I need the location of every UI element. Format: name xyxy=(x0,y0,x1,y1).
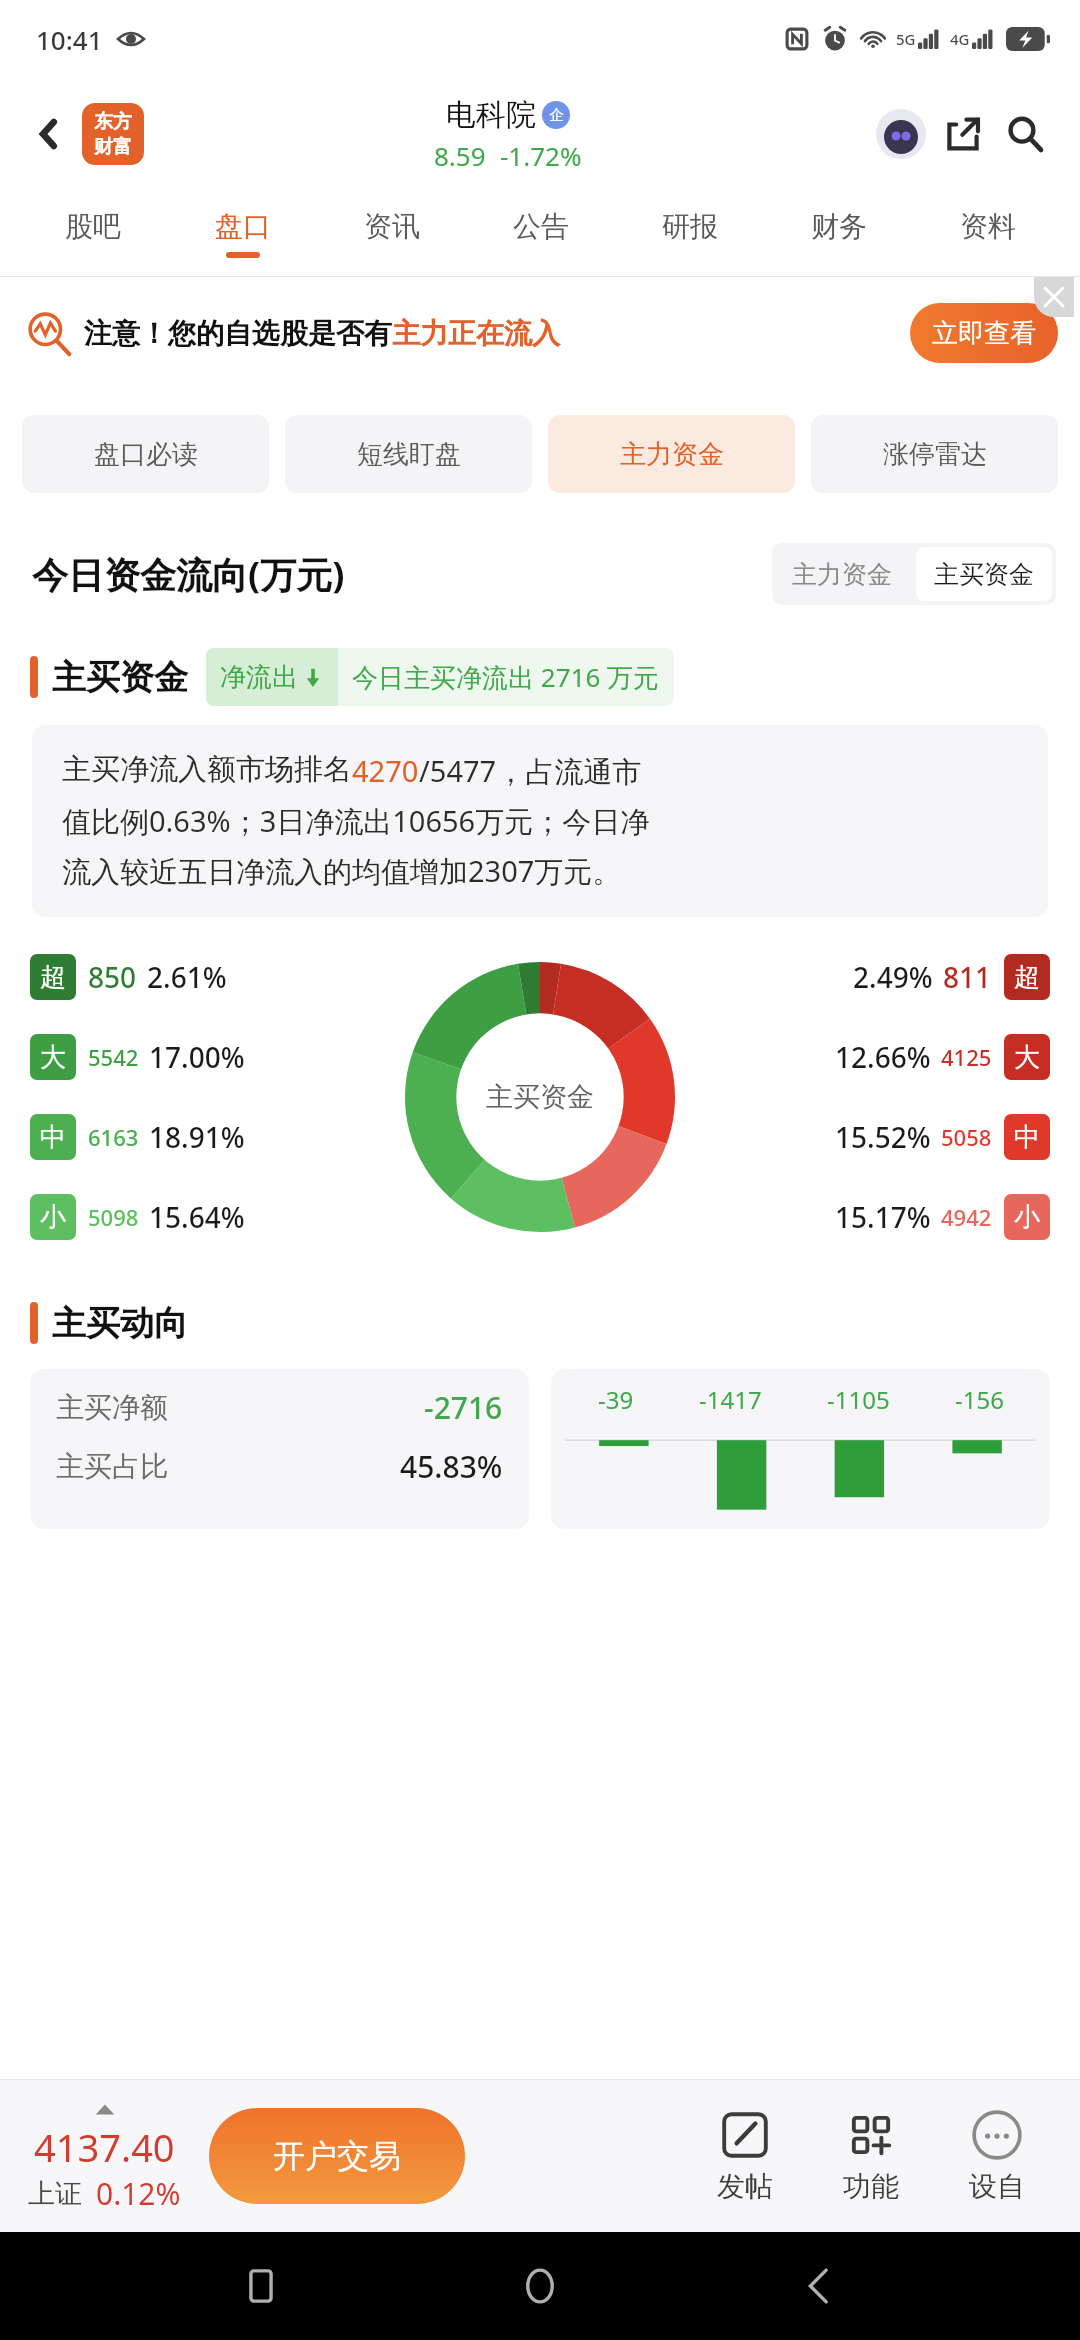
staticText: 中 xyxy=(1014,1121,1040,1154)
button[interactable]: 资料 xyxy=(913,190,1062,276)
staticText: 主力资金 xyxy=(620,438,724,471)
staticText: 功能 xyxy=(843,2169,899,2204)
staticText: 注意！您的自选股是否有 xyxy=(84,316,392,351)
staticText: 小 xyxy=(1014,1201,1040,1234)
staticText: 18.91% xyxy=(149,1118,245,1156)
staticText: 5098 xyxy=(88,1202,139,1232)
button[interactable]: 主页 xyxy=(522,2268,558,2304)
button[interactable]: 公告 xyxy=(466,190,615,276)
staticText: 大 xyxy=(40,1041,66,1074)
staticText: 主买资金 xyxy=(52,656,188,699)
staticText: 主力资金 xyxy=(792,559,892,590)
staticText: -1105 xyxy=(827,1383,890,1416)
button[interactable]: 搜索 xyxy=(996,105,1054,163)
button[interactable]: 涨停雷达 xyxy=(811,415,1058,493)
staticText: 主买占比 xyxy=(56,1449,168,1484)
staticText: 企 xyxy=(549,106,564,125)
staticText: 东方 xyxy=(94,110,132,134)
staticText: 10:41 xyxy=(36,22,103,57)
staticText: 5542 xyxy=(88,1042,139,1072)
staticText: 15.17% xyxy=(835,1198,931,1236)
button[interactable]: 主力资金 xyxy=(548,415,795,493)
staticText: 大 xyxy=(1014,1041,1040,1074)
staticText: 值比例0.63%；3日净流出10656万元；今日净 xyxy=(62,801,650,841)
staticText: 主买净额 xyxy=(56,1390,168,1425)
staticText: 股吧 xyxy=(65,209,121,244)
button[interactable]: 研报 xyxy=(615,190,764,276)
staticText: 财富 xyxy=(94,135,132,159)
staticText: 涨停雷达 xyxy=(883,438,987,471)
staticText: 4G xyxy=(950,29,970,49)
staticText: 45.83% xyxy=(400,1446,503,1487)
staticText: 立即查看 xyxy=(932,317,1036,350)
staticText: 0.12% xyxy=(96,2173,181,2214)
button[interactable]: 资讯 xyxy=(317,190,466,276)
staticText: 6163 xyxy=(88,1122,139,1152)
staticText: 5G xyxy=(896,29,916,49)
staticText: 小 xyxy=(40,1201,66,1234)
staticText: 中 xyxy=(40,1121,66,1154)
staticText: 4942 xyxy=(941,1202,992,1232)
staticText: 主买资金 xyxy=(486,1080,594,1114)
button[interactable]: 净流出 xyxy=(206,648,674,706)
button[interactable]: 股吧 xyxy=(18,190,168,276)
staticText: 4270 xyxy=(352,751,419,790)
button[interactable]: 主买资金 xyxy=(916,547,1052,601)
staticText: 17.00% xyxy=(149,1038,245,1076)
button[interactable]: 短线盯盘 xyxy=(285,415,532,493)
button[interactable]: 头像 xyxy=(872,105,930,163)
staticText: 主买净流入额市场排名 xyxy=(62,751,352,788)
button[interactable]: 返回 xyxy=(22,107,76,161)
staticText: 财务 xyxy=(811,209,867,244)
button[interactable]: 盘口 xyxy=(168,190,317,276)
button[interactable]: 盘口必读 xyxy=(22,415,269,493)
staticText: 12.66% xyxy=(835,1038,931,1076)
staticText: 资讯 xyxy=(364,209,420,244)
staticText: -156 xyxy=(955,1383,1004,1416)
staticText: 2.49% xyxy=(853,958,933,996)
button[interactable]: 返回 xyxy=(801,2268,837,2304)
staticText: 研报 xyxy=(662,209,718,244)
staticText: 8.59 xyxy=(434,138,486,173)
button[interactable]: 关闭 xyxy=(1034,277,1074,317)
button[interactable]: 最近任务 xyxy=(243,2268,279,2304)
staticText: 主买动向 xyxy=(52,1302,188,1345)
staticText: 超 xyxy=(1014,961,1040,994)
staticText: 超 xyxy=(40,961,66,994)
button[interactable]: 东方财富 xyxy=(82,103,144,165)
button[interactable]: 分享 xyxy=(934,105,992,163)
staticText: 电科院 xyxy=(446,96,536,134)
staticText: 短线盯盘 xyxy=(357,438,461,471)
button[interactable]: 发帖 xyxy=(682,2103,808,2210)
staticText: -39 xyxy=(598,1383,634,1416)
staticText: 主买资金 xyxy=(934,559,1034,590)
button[interactable]: 立即查看 xyxy=(910,303,1058,363)
staticText: 811 xyxy=(943,958,992,996)
staticText: 5058 xyxy=(941,1122,992,1152)
button[interactable]: 功能 xyxy=(808,2103,934,2210)
staticText: -2716 xyxy=(424,1387,503,1428)
staticText: 发帖 xyxy=(717,2169,773,2204)
staticText: 流入较近五日净流入的均值增加2307万元。 xyxy=(62,851,622,891)
staticText: -1.72% xyxy=(500,138,582,173)
staticText: 盘口 xyxy=(215,209,271,244)
button[interactable]: 4137.40 xyxy=(20,2099,189,2214)
button[interactable]: 主力资金 xyxy=(772,543,912,605)
staticText: 上证 xyxy=(28,2177,82,2211)
staticText: 设自 xyxy=(969,2169,1025,2204)
staticText: 今日主买净流出 2716 万元 xyxy=(352,659,660,695)
staticText: 主力正在流入 xyxy=(392,316,560,351)
staticText: 850 xyxy=(88,958,137,996)
staticText: 开户交易 xyxy=(273,2136,401,2176)
staticText: 15.64% xyxy=(149,1198,245,1236)
staticText: 4137.40 xyxy=(34,2121,175,2173)
button[interactable]: 财务 xyxy=(764,190,913,276)
button[interactable]: 开户交易 xyxy=(209,2108,465,2204)
button[interactable]: 设自 xyxy=(934,2103,1060,2210)
staticText: 2.61% xyxy=(147,958,227,996)
staticText: 公告 xyxy=(513,209,569,244)
staticText: 盘口必读 xyxy=(94,438,198,471)
staticText: 资料 xyxy=(960,209,1016,244)
staticText: 15.52% xyxy=(835,1118,931,1156)
staticText: -1417 xyxy=(699,1383,762,1416)
